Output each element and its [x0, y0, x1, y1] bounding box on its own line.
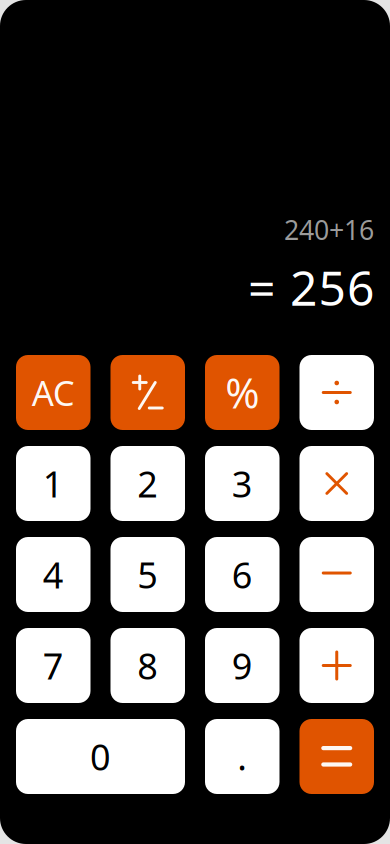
- button[interactable]: 1: [16, 446, 90, 521]
- staticText: 6: [232, 551, 253, 598]
- button[interactable]: 0: [16, 719, 185, 794]
- staticText: AC: [32, 369, 75, 415]
- staticText: 240+16: [284, 212, 374, 247]
- staticText: 8: [137, 642, 158, 689]
- button[interactable]: 3: [205, 446, 279, 521]
- staticText: 3: [232, 460, 253, 507]
- button[interactable]: %: [205, 355, 279, 430]
- button[interactable]: Equals: [299, 719, 374, 794]
- staticText: 5: [137, 551, 158, 598]
- button[interactable]: Divide: [299, 355, 374, 430]
- staticText: 2: [137, 460, 158, 507]
- button[interactable]: .: [205, 719, 279, 794]
- staticText: %: [225, 365, 259, 420]
- button[interactable]: 5: [110, 537, 185, 612]
- button[interactable]: 8: [110, 628, 185, 703]
- button[interactable]: Plus minus: [110, 355, 185, 430]
- staticText: 4: [43, 551, 64, 598]
- button[interactable]: 9: [205, 628, 279, 703]
- button[interactable]: 7: [16, 628, 90, 703]
- staticText: 7: [43, 642, 64, 689]
- staticText: 9: [232, 642, 253, 689]
- staticText: 1: [43, 460, 64, 507]
- button[interactable]: Multiply: [299, 446, 374, 521]
- button[interactable]: Subtract: [299, 537, 374, 612]
- button[interactable]: AC: [16, 355, 90, 430]
- button[interactable]: 2: [110, 446, 185, 521]
- staticText: .: [237, 733, 247, 780]
- button[interactable]: 6: [205, 537, 279, 612]
- staticText: = 256: [248, 255, 374, 319]
- staticText: 0: [90, 733, 111, 780]
- button[interactable]: Add: [299, 628, 374, 703]
- button[interactable]: 4: [16, 537, 90, 612]
